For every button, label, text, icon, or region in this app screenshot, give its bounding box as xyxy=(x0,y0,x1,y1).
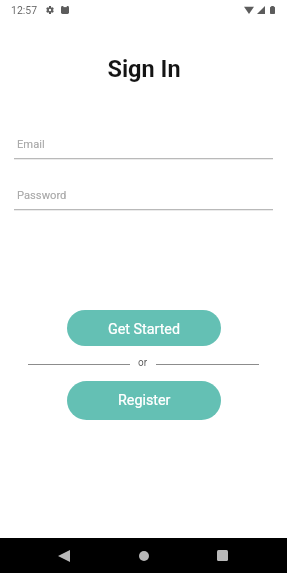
button[interactable]: Recents xyxy=(205,538,239,573)
staticText: Password xyxy=(17,189,67,202)
staticText: 12:57 xyxy=(11,4,38,16)
staticText: Register xyxy=(118,392,171,409)
button[interactable]: Register xyxy=(67,381,221,420)
staticText: Sign In xyxy=(107,55,181,83)
button[interactable]: Home xyxy=(127,538,161,573)
staticText: Get Started xyxy=(108,321,181,338)
staticText: or xyxy=(138,357,148,369)
button[interactable]: Get Started xyxy=(67,310,221,346)
staticText: Email xyxy=(17,138,45,151)
button[interactable]: Back xyxy=(47,538,81,573)
